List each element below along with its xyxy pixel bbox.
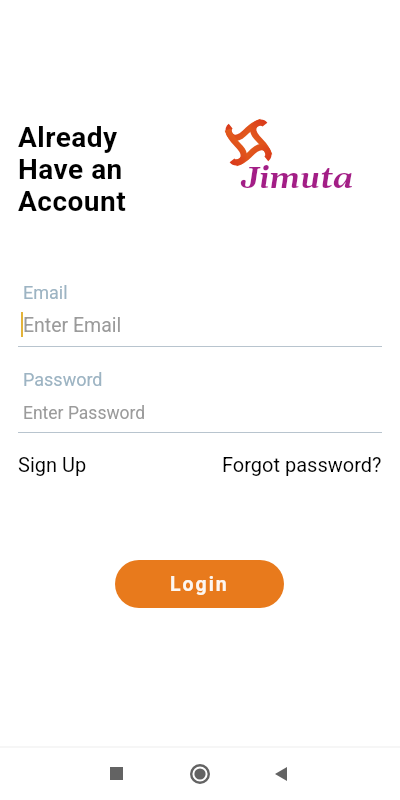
staticText: Enter Password — [23, 403, 146, 424]
staticText: Forgot password? — [222, 453, 382, 476]
button[interactable]: Forgot password? — [222, 453, 382, 476]
button[interactable]: Home — [188, 762, 211, 785]
button[interactable]: Password — [18, 368, 382, 434]
button[interactable]: Recent apps — [105, 762, 128, 785]
button[interactable]: Email — [18, 280, 382, 347]
staticText: Email — [23, 282, 68, 303]
staticText: Sign Up — [18, 453, 87, 476]
staticText: Login — [170, 573, 229, 596]
staticText: Enter Email — [23, 314, 122, 337]
button[interactable]: Back — [269, 762, 292, 785]
button[interactable]: Sign Up — [18, 453, 87, 476]
staticText: Password — [23, 369, 103, 390]
staticText: Jimuta — [241, 160, 353, 198]
staticText: Already Have an Account — [18, 121, 127, 218]
button[interactable]: Login — [115, 560, 284, 608]
